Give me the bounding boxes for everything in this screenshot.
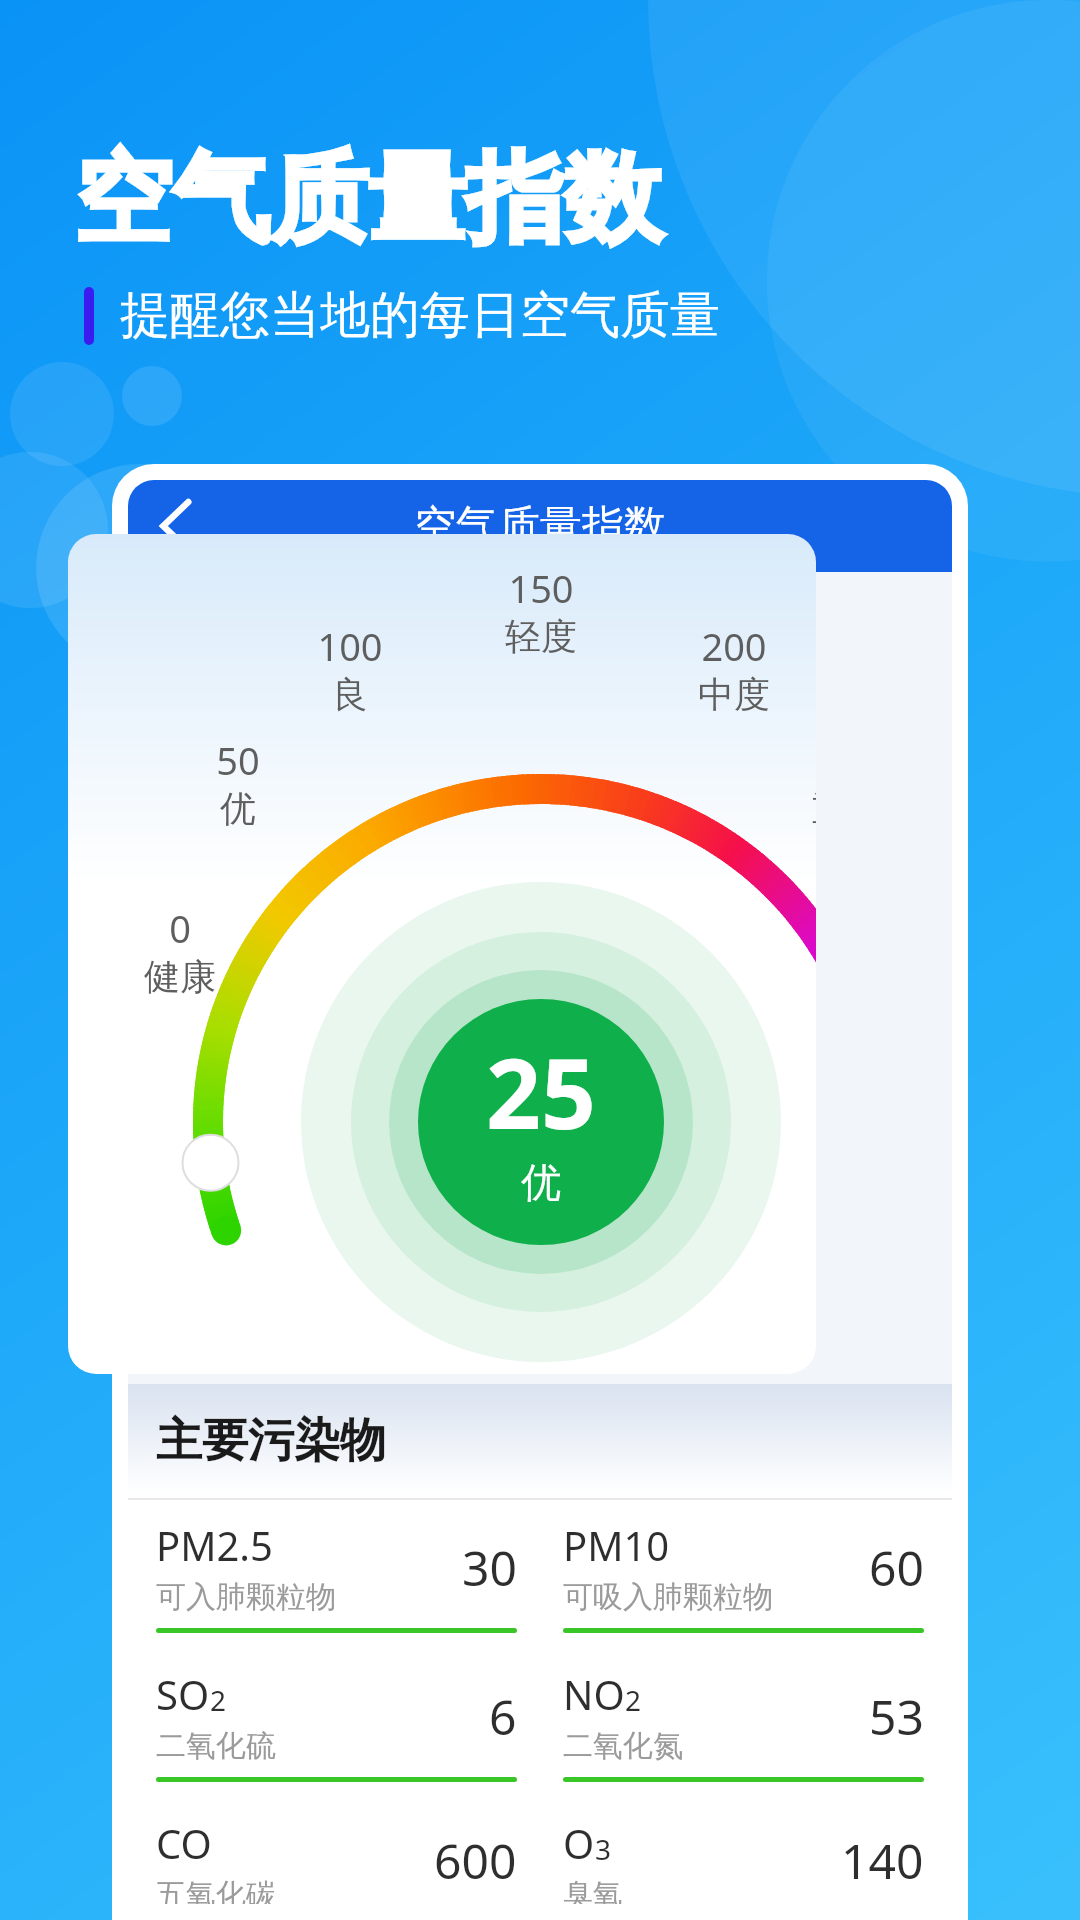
button[interactable]: PM10 (563, 1518, 924, 1667)
staticText: 提醒您当地的每日空气质量 (120, 284, 720, 347)
staticText: 臭氧 (563, 1876, 623, 1904)
staticText: 150 (508, 562, 574, 614)
staticText: CO (156, 1816, 212, 1870)
staticText: 二氧化氮 (563, 1727, 683, 1765)
staticText: 30 (462, 1535, 517, 1600)
staticText: 可入肺颗粒物 (156, 1578, 336, 1616)
staticText: 二氧化硫 (156, 1727, 276, 1765)
staticText: 轻度 (505, 614, 577, 659)
button[interactable]: CO (156, 1816, 517, 1904)
staticText: 2 (210, 1681, 227, 1719)
button[interactable]: PM2.5 (156, 1518, 517, 1667)
button[interactable]: NO (563, 1667, 924, 1816)
staticText: 53 (869, 1684, 924, 1749)
staticText: SO (156, 1667, 210, 1721)
staticText: 60 (869, 1535, 924, 1600)
staticText: O (563, 1816, 595, 1870)
staticText: PM2.5 (156, 1518, 273, 1572)
staticText: 25 (486, 1026, 596, 1157)
staticText: PM10 (563, 1518, 670, 1572)
staticText: 主要污染物 (156, 1412, 386, 1470)
staticText: 可吸入肺颗粒物 (563, 1578, 773, 1616)
staticText: 200 (701, 620, 767, 672)
staticText: 良 (332, 672, 368, 717)
staticText: 0 (169, 902, 191, 954)
button[interactable]: O (563, 1816, 924, 1904)
staticText: NO (563, 1667, 625, 1721)
button[interactable]: Back (128, 483, 214, 569)
staticText: 重度 (812, 786, 816, 831)
staticText: 优 (220, 786, 256, 831)
button[interactable]: SO (156, 1667, 517, 1816)
staticText: 140 (841, 1828, 924, 1893)
staticText: 空气质量指数 (74, 138, 662, 261)
staticText: 中度 (698, 672, 770, 717)
staticText: 100 (317, 620, 383, 672)
staticText: 2 (625, 1681, 642, 1719)
staticText: 健康 (144, 954, 216, 999)
staticText: 50 (216, 734, 260, 786)
staticText: 3 (595, 1830, 612, 1868)
staticText: 600 (434, 1828, 517, 1893)
staticText: 优 (521, 1157, 561, 1207)
staticText: 五氧化碳 (156, 1876, 276, 1904)
staticText: 空气质量指数 (414, 500, 666, 553)
staticText: 6 (489, 1684, 517, 1749)
